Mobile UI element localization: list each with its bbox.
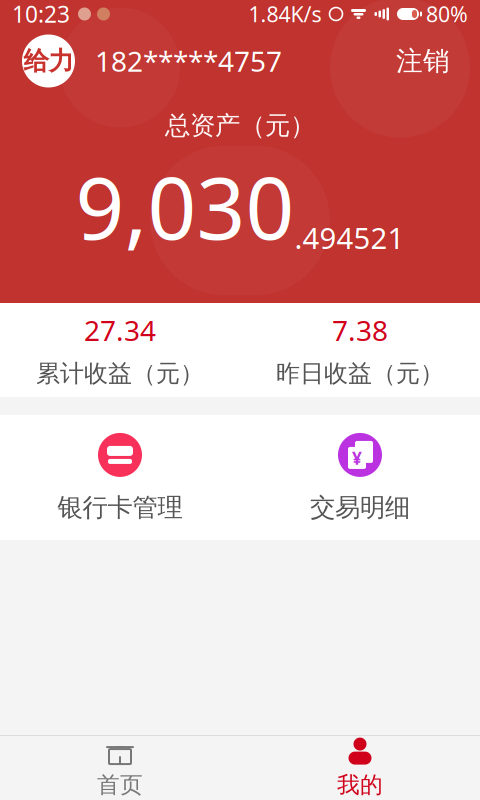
button[interactable]: 首页 xyxy=(0,729,240,800)
staticText: 交易明细 xyxy=(310,492,410,523)
staticText: 80% xyxy=(426,0,468,28)
button[interactable]: ¥ xyxy=(240,412,480,543)
button[interactable]: 注销 xyxy=(388,37,458,85)
staticText: 10:23 xyxy=(12,0,70,29)
staticText: 27.34 xyxy=(84,312,156,349)
staticText: 总资产（元） xyxy=(165,110,315,141)
staticText: 银行卡管理 xyxy=(57,492,182,523)
staticText: 首页 xyxy=(97,771,143,799)
staticText: 累计收益（元） xyxy=(36,359,204,388)
button[interactable]: 银行卡管理 xyxy=(0,412,240,543)
staticText: 注销 xyxy=(396,45,450,77)
staticText: ¥ xyxy=(352,446,362,469)
staticText: 7.38 xyxy=(332,312,388,349)
staticText: 我的 xyxy=(337,771,383,799)
staticText: 昨日收益（元） xyxy=(276,359,444,388)
staticText: 9,030 xyxy=(75,150,294,263)
staticText: 182*****4757 xyxy=(95,42,282,80)
staticText: 给力 xyxy=(23,45,73,76)
staticText: 1.84K/s xyxy=(248,0,321,28)
staticText: .494521 xyxy=(294,218,404,257)
button[interactable]: 我的 xyxy=(240,729,480,800)
